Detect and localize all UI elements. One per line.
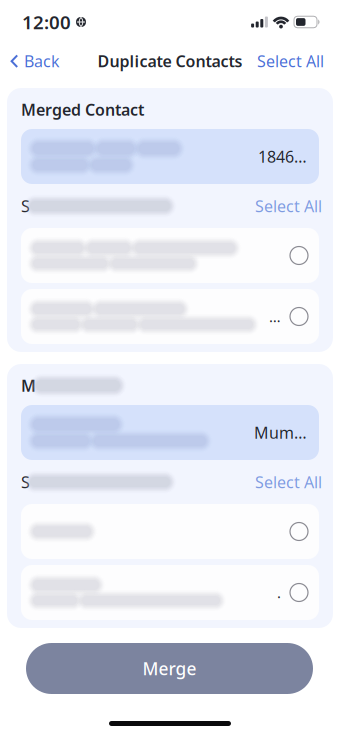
staticText: Select All	[255, 195, 322, 217]
staticText: 1846…	[258, 146, 307, 167]
staticText: Select All	[255, 471, 322, 493]
staticText: .	[277, 583, 281, 602]
staticText: Mum…	[254, 422, 307, 443]
button[interactable]	[21, 228, 319, 283]
button[interactable]: Select All	[255, 471, 322, 493]
staticText: Select All	[257, 50, 324, 72]
button[interactable]: Back	[0, 44, 68, 78]
button[interactable]: Select All	[249, 44, 340, 78]
button[interactable]: 1846…	[21, 129, 319, 184]
staticText: Merged Contact	[21, 99, 144, 120]
button[interactable]: Select All	[255, 195, 322, 217]
staticText: S	[21, 195, 30, 217]
staticText: Merge	[142, 657, 196, 680]
staticText: 12:00	[22, 10, 71, 34]
staticText: Duplicate Contacts	[97, 50, 242, 72]
staticText: M	[21, 375, 36, 396]
button[interactable]	[21, 504, 319, 559]
button[interactable]: Merge	[26, 643, 313, 694]
button[interactable]: .	[21, 565, 319, 620]
button[interactable]: Mum…	[21, 405, 319, 460]
staticText: S	[21, 471, 30, 493]
button[interactable]: …	[21, 289, 319, 344]
staticText: …	[269, 307, 281, 326]
staticText: Back	[24, 50, 60, 72]
